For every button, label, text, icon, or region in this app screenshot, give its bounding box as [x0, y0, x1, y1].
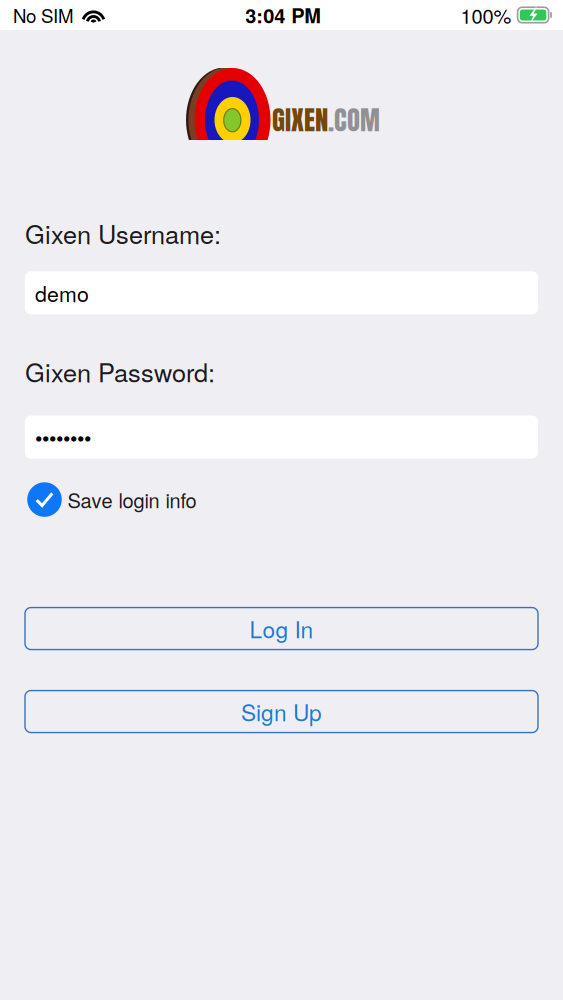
staticText: Save login info: [67, 485, 196, 514]
staticText: Gixen Password:: [25, 353, 215, 390]
button[interactable]: Sign Up: [25, 691, 538, 733]
staticText: GIXEN: [272, 100, 328, 140]
staticText: 3:04 PM: [245, 1, 321, 29]
staticText: 100%: [461, 1, 512, 29]
staticText: ••••••••: [35, 422, 91, 452]
staticText: Gixen Username:: [25, 215, 221, 251]
button[interactable]: Log In: [25, 608, 538, 650]
button[interactable]: Save login info: [0, 478, 563, 522]
staticText: .COM: [328, 100, 380, 140]
staticText: No SIM: [13, 2, 74, 28]
staticText: Sign Up: [241, 695, 322, 728]
staticText: demo: [35, 277, 89, 308]
staticText: Log In: [249, 612, 313, 645]
